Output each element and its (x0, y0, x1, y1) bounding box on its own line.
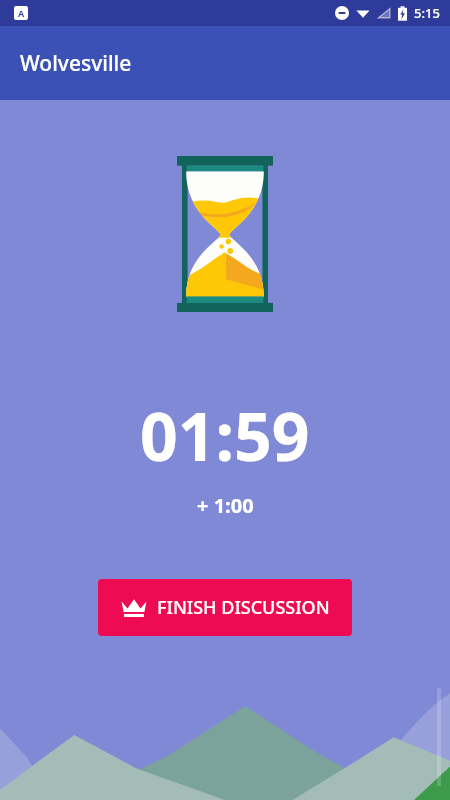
staticText: 5:15 (414, 4, 440, 22)
staticText: + 1:00 (197, 492, 254, 519)
other: Crown (121, 597, 147, 619)
staticText: FINISH DISCUSSION (157, 595, 330, 620)
staticText: Wolvesville (20, 49, 132, 78)
staticText: 01:59 (140, 390, 310, 480)
button[interactable]: Crown (98, 579, 352, 636)
staticText: A (18, 7, 25, 19)
